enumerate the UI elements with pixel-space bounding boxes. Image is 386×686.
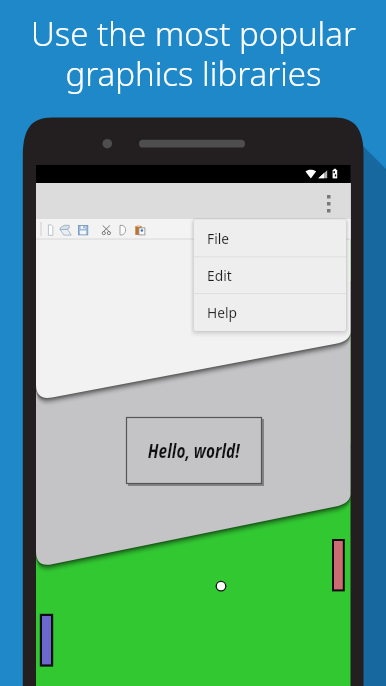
staticText: Edit: [207, 266, 232, 285]
button[interactable]: Edit: [194, 257, 346, 294]
button[interactable]: File: [194, 220, 346, 257]
staticText: Hello, world!: [148, 437, 240, 464]
staticText: Use the most popular graphics libraries: [31, 11, 356, 96]
staticText: Help: [207, 303, 238, 322]
button[interactable]: Help: [194, 294, 346, 331]
staticText: File: [207, 229, 230, 248]
